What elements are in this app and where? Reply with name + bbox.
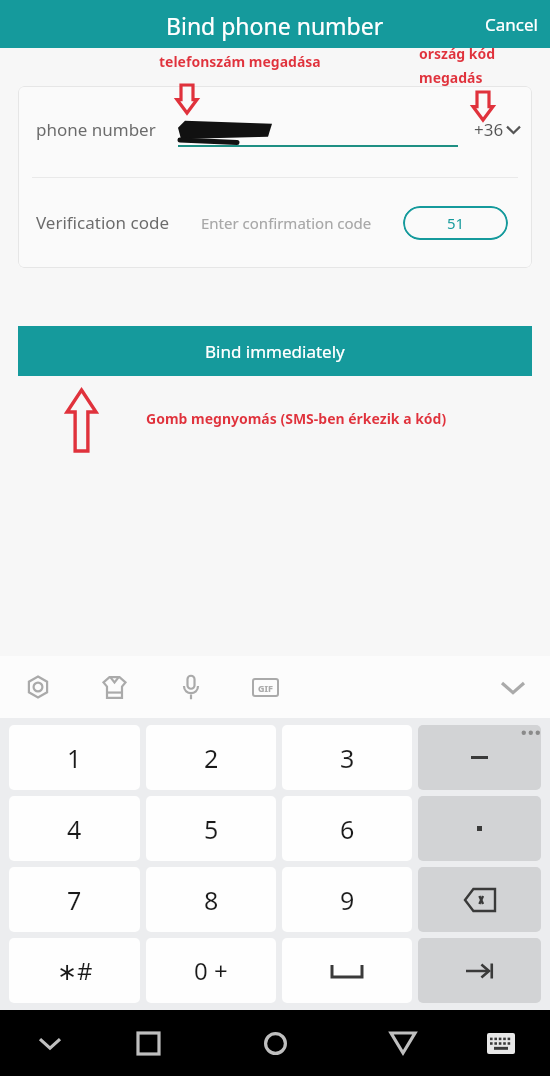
- button[interactable]: 7: [9, 867, 140, 932]
- button[interactable]: 8: [146, 867, 276, 932]
- staticText: ∗#: [57, 954, 93, 987]
- staticText: 6: [340, 812, 355, 846]
- staticText: megadás: [419, 68, 483, 87]
- button[interactable]: Switch keyboard: [452, 1010, 550, 1076]
- staticText: 7: [67, 883, 82, 917]
- button[interactable]: ∗#: [9, 938, 140, 1003]
- button[interactable]: Recents: [99, 1010, 197, 1076]
- button[interactable]: [418, 796, 541, 861]
- button[interactable]: Bind immediately: [18, 326, 532, 376]
- button[interactable]: [418, 938, 541, 1003]
- staticText: +36: [474, 118, 504, 141]
- button[interactable]: Collapse keyboard: [496, 670, 530, 704]
- staticText: Enter confirmation code: [201, 213, 372, 233]
- button[interactable]: Settings: [21, 670, 55, 704]
- button[interactable]: Cancel: [473, 3, 550, 46]
- button[interactable]: 51: [403, 206, 508, 240]
- staticText: 5: [204, 812, 219, 846]
- staticText: telefonszám megadása: [159, 52, 321, 71]
- button[interactable]: Voice input: [174, 670, 208, 704]
- staticText: 2: [204, 741, 219, 775]
- button[interactable]: [418, 725, 541, 790]
- button[interactable]: 2: [146, 725, 276, 790]
- staticText: 8: [204, 883, 219, 917]
- staticText: ország kód: [419, 44, 496, 63]
- button[interactable]: 3: [282, 725, 412, 790]
- button[interactable]: +36: [462, 110, 532, 149]
- button[interactable]: 4: [9, 796, 140, 861]
- staticText: GIF: [258, 682, 273, 694]
- button[interactable]: [282, 938, 412, 1003]
- button[interactable]: GIF: [248, 670, 282, 704]
- button[interactable]: [418, 867, 541, 932]
- button[interactable]: Stickers: [97, 670, 131, 704]
- staticText: phone number: [36, 118, 156, 141]
- staticText: Verification code: [36, 211, 170, 234]
- button[interactable]: Back: [354, 1010, 452, 1076]
- staticText: Bind immediately: [205, 340, 345, 363]
- button[interactable]: Home: [197, 1010, 354, 1076]
- staticText: 9: [340, 883, 355, 917]
- staticText: Gomb megnyomás (SMS-ben érkezik a kód): [146, 409, 447, 428]
- button[interactable]: 0 +: [146, 938, 276, 1003]
- staticText: Cancel: [485, 13, 538, 36]
- button[interactable]: 1: [9, 725, 140, 790]
- button[interactable]: phone number: [18, 86, 532, 176]
- staticText: 51: [447, 213, 465, 233]
- button[interactable]: Hide keyboard: [0, 1010, 99, 1076]
- staticText: 4: [67, 812, 82, 846]
- staticText: 1: [67, 741, 82, 775]
- staticText: 0 +: [194, 954, 228, 987]
- button[interactable]: 5: [146, 796, 276, 861]
- button[interactable]: Verification code: [18, 178, 532, 267]
- button[interactable]: 6: [282, 796, 412, 861]
- button[interactable]: 9: [282, 867, 412, 932]
- staticText: Bind phone number: [166, 10, 384, 41]
- staticText: 3: [340, 741, 355, 775]
